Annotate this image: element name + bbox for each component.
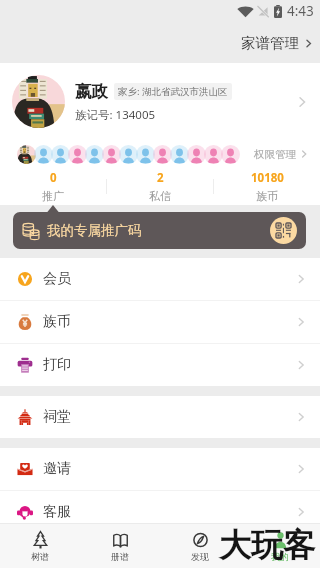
button[interactable]: 客服	[0, 491, 320, 533]
staticText: 我的	[271, 551, 289, 562]
staticText: 册谱	[111, 551, 129, 562]
staticText: 族币	[43, 313, 71, 331]
staticText: 权限管理	[254, 148, 296, 161]
button[interactable]: 嬴政	[0, 63, 320, 140]
staticText: 2	[157, 170, 164, 186]
button[interactable]: 2	[107, 168, 213, 205]
button[interactable]: 族币	[0, 301, 320, 343]
button[interactable]: 我的专属推广码	[13, 212, 306, 249]
button[interactable]: 10180	[214, 168, 320, 205]
button[interactable]: 权限管理	[0, 140, 320, 168]
staticText: 推广	[42, 189, 64, 203]
button[interactable]: 打印	[0, 344, 320, 386]
staticText: 家乡: 湖北省武汉市洪山区	[118, 85, 228, 98]
other: 扫码	[276, 223, 291, 238]
staticText: 会员	[43, 270, 71, 288]
staticText: 我的专属推广码	[47, 222, 142, 239]
staticText: 祠堂	[43, 408, 71, 426]
button[interactable]: 0	[0, 168, 106, 205]
staticText: 发现	[191, 551, 209, 562]
staticText: 4:43	[287, 2, 314, 20]
staticText: 10180	[251, 170, 284, 186]
button[interactable]: 我的	[240, 524, 320, 568]
button[interactable]: 家谱管理	[227, 28, 320, 58]
button[interactable]: 邀请	[0, 448, 320, 490]
button[interactable]: 树谱	[0, 524, 80, 568]
button[interactable]: 发现	[160, 524, 240, 568]
other: 册谱	[113, 531, 128, 549]
button[interactable]: 会员	[0, 258, 320, 300]
staticText: 族币	[256, 189, 278, 203]
staticText: 邀请	[43, 460, 71, 478]
staticText: 大玩客	[219, 525, 315, 565]
staticText: 打印	[43, 356, 71, 374]
button[interactable]: 册谱	[80, 524, 160, 568]
other: 发现	[193, 531, 208, 549]
staticText: 私信	[149, 189, 171, 203]
other: 树谱	[33, 531, 48, 549]
staticText: 族记号: 134005	[75, 107, 156, 123]
staticText: 家谱管理	[241, 34, 299, 52]
other: 我的	[273, 531, 288, 549]
staticText: 嬴政	[75, 81, 108, 102]
staticText: 树谱	[31, 551, 49, 562]
button[interactable]: 祠堂	[0, 396, 320, 438]
staticText: 客服	[43, 503, 71, 521]
staticText: 0	[50, 170, 57, 186]
